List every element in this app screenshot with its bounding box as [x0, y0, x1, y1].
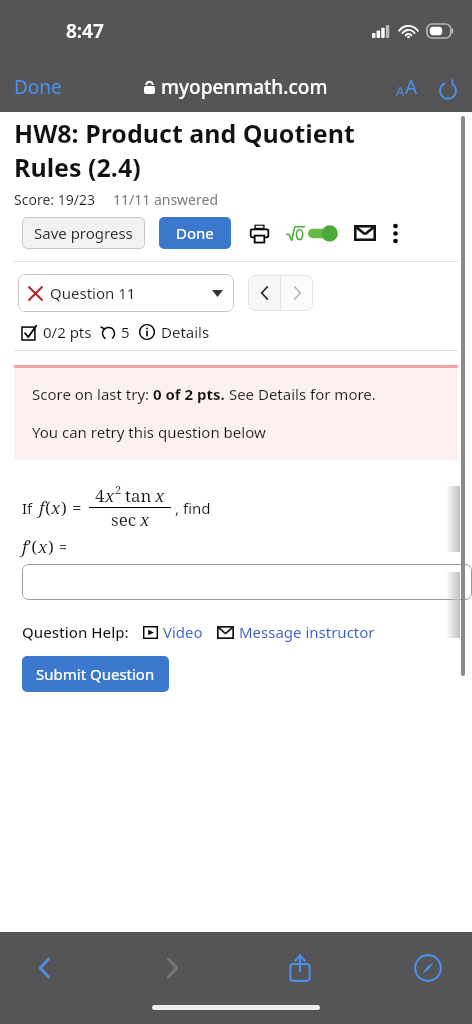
- staticText: You can retry this question below: [32, 422, 266, 442]
- staticText: x: [51, 496, 61, 519]
- staticText: 8:47: [66, 18, 104, 44]
- staticText: Done: [176, 223, 214, 243]
- staticText: , find: [175, 498, 211, 518]
- staticText: Submit Question: [36, 664, 155, 684]
- staticText: x: [105, 484, 115, 507]
- button[interactable]: Forward: [150, 946, 194, 990]
- button[interactable]: Safari: [406, 946, 450, 990]
- button[interactable]: Message instructor: [217, 622, 375, 642]
- staticText: If: [22, 498, 37, 518]
- staticText: x: [140, 508, 150, 531]
- button[interactable]: Save progress: [22, 217, 145, 249]
- staticText: ): [61, 496, 67, 519]
- button[interactable]: Next question: [281, 275, 313, 311]
- staticText: 2: [115, 482, 122, 497]
- staticText: HW8: Product and Quotient Rules (2.4): [14, 116, 412, 184]
- staticText: (: [45, 496, 51, 519]
- staticText: 11/11 answered: [113, 190, 218, 209]
- staticText: Question Help:: [22, 622, 129, 642]
- staticText: See Details for more.: [225, 384, 376, 404]
- staticText: Video: [163, 622, 203, 642]
- button[interactable]: Video: [143, 622, 203, 642]
- staticText: Question 11: [50, 283, 136, 303]
- staticText: 0/2 pts: [43, 322, 92, 342]
- staticText: f: [39, 496, 45, 519]
- staticText: 0 of 2 pts.: [153, 384, 225, 404]
- button[interactable]: Details info: [139, 324, 155, 340]
- button[interactable]: Done: [14, 74, 62, 100]
- button[interactable]: Print: [249, 223, 270, 244]
- staticText: sec: [111, 508, 137, 531]
- staticText: myopenmath.com: [161, 74, 328, 100]
- button[interactable]: [22, 564, 472, 600]
- staticText: x: [155, 484, 165, 507]
- staticText: A: [405, 74, 418, 100]
- staticText: =: [59, 537, 68, 556]
- staticText: =: [72, 496, 82, 519]
- button[interactable]: Back: [22, 946, 66, 990]
- button[interactable]: Submit Question: [22, 656, 169, 692]
- staticText: x: [38, 535, 48, 558]
- staticText: 4: [95, 484, 105, 507]
- button[interactable]: Text size: [396, 74, 418, 100]
- staticText: Save progress: [34, 223, 133, 243]
- button[interactable]: Question 11: [18, 274, 234, 312]
- staticText: ′(: [28, 535, 38, 558]
- button[interactable]: Reload: [438, 80, 458, 100]
- button[interactable]: Math preview toggle: [286, 225, 339, 242]
- staticText: Message instructor: [239, 622, 375, 642]
- staticText: tan: [125, 484, 152, 507]
- button[interactable]: More options: [392, 223, 399, 244]
- button[interactable]: Details: [161, 322, 210, 342]
- staticText: f: [22, 535, 28, 558]
- staticText: 5: [121, 322, 130, 342]
- staticText: Score on last try:: [32, 384, 153, 404]
- button[interactable]: Messages: [354, 225, 376, 241]
- staticText: A: [396, 82, 405, 100]
- button[interactable]: Previous question: [248, 275, 280, 311]
- staticText: Score: 19/23: [14, 190, 95, 209]
- staticText: ): [48, 535, 54, 558]
- button[interactable]: Done: [159, 217, 231, 249]
- button[interactable]: Share: [278, 946, 322, 990]
